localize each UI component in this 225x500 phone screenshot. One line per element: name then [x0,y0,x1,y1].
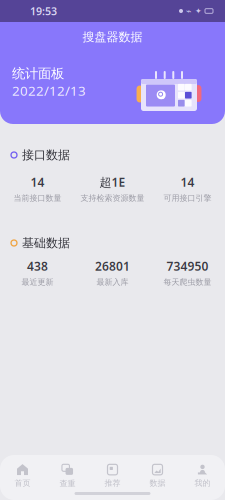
staticText: 首页 [14,478,30,488]
staticText: 接口数据 [22,148,70,162]
staticText: 2022/12/13 [12,82,86,99]
staticText: 推荐 [104,478,120,488]
staticText: 基础数据 [22,236,70,250]
staticText: 最近更新 [21,277,53,287]
staticText: 超1E [99,174,125,190]
staticText: 14 [30,174,44,190]
staticText: 734950 [166,258,208,274]
staticText: ⌁ [186,6,192,16]
staticText: 最新入库 [96,277,128,287]
button[interactable]: 我的 [180,464,225,488]
staticText: ✦ [195,6,202,16]
staticText: 统计面板 [12,65,64,82]
button[interactable]: 查重 [45,464,90,488]
staticText: 查重 [59,479,75,488]
button[interactable]: 推荐 [90,464,135,488]
staticText: 数据 [149,478,165,488]
staticText: 可用接口引擎 [163,193,211,203]
staticText: 14 [180,174,194,190]
staticText: 我的 [194,478,210,488]
staticText: 支持检索资源数量 [80,193,144,203]
button[interactable]: 数据 [135,464,180,488]
staticText: 搜盘器数据 [82,30,142,44]
staticText: 当前接口数量 [13,193,61,203]
staticText: 26801 [95,258,130,274]
staticText: 19:53 [30,4,57,18]
staticText: 438 [27,258,48,274]
button[interactable]: 首页 [0,464,45,488]
staticText: 每天爬虫数量 [163,277,211,287]
